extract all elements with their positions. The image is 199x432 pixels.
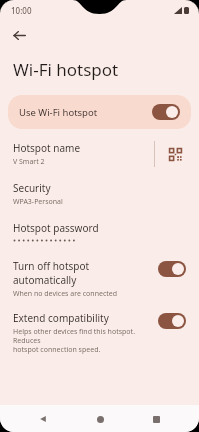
button[interactable]: Security <box>0 181 199 207</box>
staticText: When no devices are connected <box>13 289 118 299</box>
button[interactable]: Recent apps <box>143 406 169 432</box>
button[interactable]: Back <box>30 406 56 432</box>
staticText: Extend compatibility <box>13 311 109 325</box>
button[interactable]: Home <box>87 406 113 432</box>
staticText: V Smart 2 <box>13 157 45 167</box>
button[interactable]: Turn off hotspot automatically <box>0 259 199 299</box>
staticText: Helps other devices find this hotspot. R… <box>13 327 150 345</box>
staticText: hotspot connection speed. <box>13 345 101 355</box>
button[interactable]: Use Wi-Fi hotspot <box>8 95 191 129</box>
button[interactable]: Hotspot name <box>13 141 154 167</box>
staticText: Wi-Fi hotspot <box>13 58 119 81</box>
staticText: Use Wi-Fi hotspot <box>19 106 152 119</box>
staticText: Turn off hotspot automatically <box>13 259 150 287</box>
button[interactable]: Hotspot password <box>0 221 199 243</box>
button[interactable]: Share hotspot QR code <box>164 143 186 165</box>
staticText: Hotspot name <box>13 141 81 155</box>
staticText: WPA3-Personal <box>13 197 63 207</box>
button[interactable]: Extend compatibility <box>0 311 199 355</box>
staticText: Security <box>13 181 51 195</box>
staticText: Hotspot password <box>13 221 99 235</box>
staticText: 10:00 <box>11 5 32 16</box>
button[interactable]: Back <box>6 22 32 48</box>
